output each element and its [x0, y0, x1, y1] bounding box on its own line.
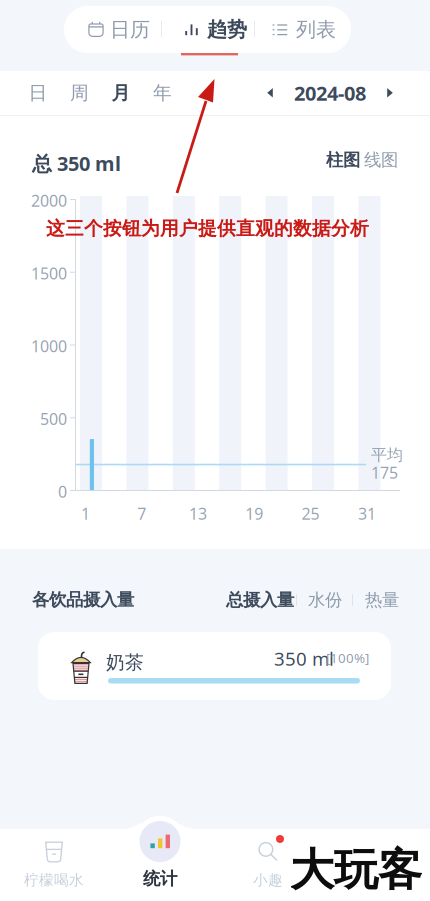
staticText: 2024-08 [294, 80, 366, 106]
button[interactable]: 年 [141, 71, 183, 115]
staticText: 500 [40, 408, 67, 429]
staticText: 列表 [296, 17, 336, 42]
staticText: [100%] [326, 649, 369, 667]
staticText: 7 [137, 503, 146, 524]
staticText: 热量 [365, 589, 399, 611]
staticText: 19 [245, 503, 263, 524]
button[interactable]: 水份 [308, 589, 342, 611]
button[interactable]: Next month [373, 73, 407, 113]
staticText: 大玩客 [290, 843, 422, 897]
staticText: 1500 [31, 263, 67, 284]
staticText: 柱图 [326, 149, 360, 171]
button[interactable]: 列表 [254, 6, 354, 53]
button[interactable]: 柱图 [328, 149, 358, 171]
staticText: 25 [302, 503, 320, 524]
staticText: 线图 [364, 149, 398, 171]
staticText: 这三个按钮为用户提供直观的数据分析 [46, 217, 369, 240]
button[interactable]: 线图 [366, 149, 396, 171]
staticText: 日 [28, 81, 47, 104]
button[interactable]: 统计 [106, 823, 214, 901]
staticText: 350 ml [274, 646, 334, 671]
staticText: 日历 [110, 17, 150, 42]
button[interactable]: 日 [17, 71, 59, 115]
staticText: 0 [58, 481, 67, 502]
staticText: 趋势 [207, 17, 247, 42]
staticText: 总 350 ml [32, 150, 121, 177]
staticText: 各饮品摄入量 [32, 589, 134, 610]
staticText: 31 [358, 503, 376, 524]
staticText: 年 [153, 81, 172, 104]
staticText: 周 [70, 81, 89, 104]
staticText: 175 [371, 462, 398, 483]
staticText: 柠檬喝水 [24, 871, 84, 889]
staticText: 水份 [308, 589, 342, 611]
staticText: 2000 [31, 190, 67, 211]
button[interactable]: 趋势 [181, 6, 253, 57]
staticText: 1 [81, 503, 90, 524]
button[interactable]: 日历 [68, 6, 170, 53]
staticText: 统计 [143, 868, 177, 889]
staticText: 小趣 [253, 871, 283, 889]
staticText: 月 [111, 81, 130, 104]
button[interactable]: 总摄入量 [226, 589, 294, 611]
button[interactable]: Previous month [253, 73, 287, 113]
staticText: 奶茶 [106, 651, 144, 674]
button[interactable]: 柠檬喝水 [0, 829, 108, 901]
staticText: 总摄入量 [226, 589, 294, 611]
button[interactable]: 月 [100, 71, 142, 115]
button[interactable]: 奶茶 [38, 632, 391, 700]
staticText: 平均 [371, 445, 403, 465]
button[interactable]: 小趣 [214, 829, 322, 901]
button[interactable]: 热量 [365, 589, 399, 611]
staticText: 1000 [31, 335, 67, 357]
button[interactable]: 周 [58, 71, 100, 115]
staticText: 13 [189, 503, 207, 524]
